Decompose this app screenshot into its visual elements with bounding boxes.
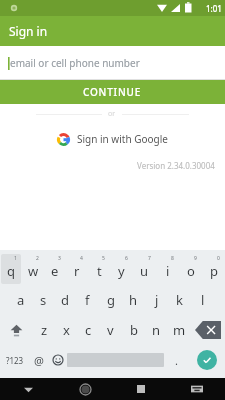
button[interactable]: n: [145, 315, 168, 345]
staticText: e: [51, 262, 59, 280]
button[interactable]: Backspace: [195, 321, 221, 339]
button[interactable]: Recents: [113, 378, 169, 400]
button[interactable]: 9: [180, 254, 201, 284]
button[interactable]: g: [99, 285, 122, 315]
button[interactable]: a: [10, 285, 32, 315]
button[interactable]: Home: [57, 378, 113, 400]
staticText: t: [97, 262, 102, 280]
staticText: o: [187, 262, 195, 280]
button[interactable]: h: [122, 285, 145, 315]
button[interactable]: x: [55, 315, 77, 345]
staticText: 6: [125, 255, 128, 262]
button[interactable]: c: [77, 315, 99, 345]
button[interactable]: m: [168, 315, 191, 345]
button[interactable]: b: [122, 315, 145, 345]
staticText: 1: [14, 255, 17, 262]
staticText: .: [175, 353, 178, 368]
staticText: i: [166, 262, 170, 280]
button[interactable]: Hide keyboard: [0, 378, 57, 400]
staticText: l: [201, 291, 205, 309]
button[interactable]: d: [54, 285, 76, 315]
button[interactable]: z: [33, 315, 55, 345]
button[interactable]: 4: [67, 254, 87, 284]
staticText: CONTINUE: [83, 85, 142, 99]
staticText: j: [155, 291, 159, 309]
button[interactable]: j: [145, 285, 168, 315]
button[interactable]: 5: [89, 254, 109, 284]
button[interactable]: l: [191, 285, 214, 315]
staticText: z: [41, 321, 48, 339]
staticText: k: [176, 291, 183, 309]
button[interactable]: 2: [23, 254, 43, 284]
button[interactable]: Emoji: [48, 345, 67, 375]
button[interactable]: email or cell phone number: [0, 46, 225, 80]
button[interactable]: 7: [134, 254, 155, 284]
staticText: c: [85, 321, 92, 339]
button[interactable]: 3: [45, 254, 65, 284]
button[interactable]: .: [164, 345, 188, 375]
staticText: 1:01: [206, 3, 222, 14]
button[interactable]: Enter: [188, 345, 225, 375]
staticText: 0: [217, 255, 220, 262]
staticText: Sign in with Google: [77, 132, 168, 146]
staticText: p: [210, 262, 218, 280]
staticText: 9: [194, 255, 197, 262]
staticText: n: [152, 321, 161, 339]
staticText: or: [108, 109, 116, 119]
staticText: b: [130, 321, 138, 339]
staticText: @: [34, 353, 44, 368]
staticText: email or cell phone number: [10, 56, 140, 70]
staticText: 7: [148, 255, 151, 262]
button[interactable]: f: [76, 285, 99, 315]
button[interactable]: 0: [203, 254, 224, 284]
staticText: f: [85, 291, 90, 309]
button[interactable]: Switch keyboard: [169, 378, 225, 400]
staticText: 5: [102, 255, 105, 262]
staticText: Version 2.34.0.30004: [137, 160, 215, 171]
button[interactable]: 6: [111, 254, 132, 284]
button[interactable]: ?123: [0, 345, 29, 375]
button[interactable]: @: [29, 345, 48, 375]
staticText: h: [129, 291, 138, 309]
staticText: u: [140, 262, 149, 280]
staticText: Sign in: [9, 23, 48, 39]
button[interactable]: Sign in with Google: [57, 132, 168, 146]
staticText: d: [61, 291, 69, 309]
staticText: x: [63, 321, 70, 339]
staticText: s: [40, 291, 47, 309]
staticText: a: [17, 291, 25, 309]
button[interactable]: CONTINUE: [0, 80, 225, 104]
staticText: w: [28, 262, 39, 280]
staticText: y: [118, 262, 125, 280]
staticText: q: [7, 262, 15, 280]
staticText: 3: [58, 255, 61, 262]
button[interactable]: 1: [1, 254, 21, 284]
button[interactable]: s: [32, 285, 54, 315]
staticText: 8: [171, 255, 174, 262]
staticText: 4: [80, 255, 83, 262]
button[interactable]: 8: [157, 254, 178, 284]
staticText: g: [107, 291, 115, 309]
staticText: ?123: [6, 355, 24, 366]
staticText: 2: [36, 255, 39, 262]
staticText: v: [107, 321, 114, 339]
button[interactable]: Shift: [3, 318, 30, 342]
button[interactable]: k: [168, 285, 191, 315]
button[interactable]: v: [99, 315, 122, 345]
staticText: r: [74, 262, 80, 280]
staticText: m: [173, 321, 186, 339]
